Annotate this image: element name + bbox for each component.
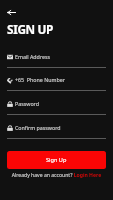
- staticText: Confirm password: [15, 124, 61, 131]
- button[interactable]: Already have an account? Login Here: [7, 172, 106, 179]
- staticText: +65 Phone Number: [15, 76, 65, 83]
- button[interactable]: Sign Up: [7, 151, 106, 169]
- staticText: Password: [15, 100, 39, 107]
- button[interactable]: Password: [7, 100, 106, 107]
- button[interactable]: Confirm password: [7, 124, 106, 131]
- button[interactable]: Email Address: [7, 53, 106, 60]
- staticText: Email Address: [15, 53, 51, 60]
- staticText: Sign Up: [46, 156, 67, 164]
- staticText: SIGN UP: [7, 21, 54, 37]
- button[interactable]: Back: [7, 7, 17, 17]
- button[interactable]: +65 Phone Number: [7, 76, 106, 83]
